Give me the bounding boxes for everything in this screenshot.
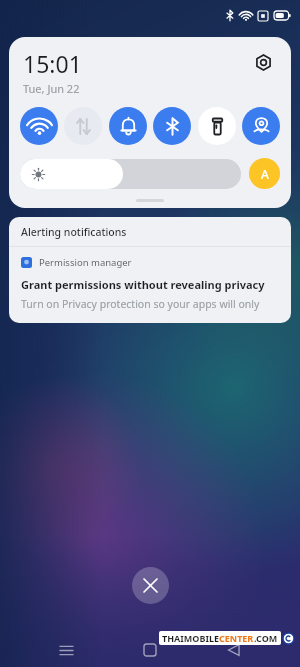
staticText: .COM xyxy=(254,632,278,644)
button[interactable]: Permission manager xyxy=(9,247,291,323)
button[interactable]: Ring mode xyxy=(109,107,147,145)
staticText: Turn on Privacy protection so your apps … xyxy=(21,297,279,311)
button[interactable]: Back xyxy=(216,633,252,667)
staticText: THAIMOBILE xyxy=(162,632,219,644)
button[interactable]: Brightness xyxy=(20,159,241,189)
button[interactable]: Settings xyxy=(249,48,277,76)
staticText: Tue, Jun 22 xyxy=(23,81,80,96)
button[interactable]: Mobile data xyxy=(64,107,102,145)
button[interactable]: Location xyxy=(242,107,280,145)
button[interactable]: Flashlight xyxy=(198,107,236,145)
button[interactable]: Close xyxy=(132,567,169,604)
button[interactable]: Alerting notifications xyxy=(9,217,291,246)
staticText: CENTER xyxy=(219,632,254,644)
button[interactable]: A xyxy=(249,158,280,189)
staticText: Alerting notifications xyxy=(21,225,127,239)
button[interactable]: Bluetooth xyxy=(153,107,191,145)
staticText: Permission manager xyxy=(39,256,132,269)
button[interactable]: Wi-Fi xyxy=(20,107,58,145)
staticText: A xyxy=(261,166,269,182)
button[interactable]: Recents xyxy=(48,633,84,667)
button[interactable]: Home xyxy=(132,633,168,667)
staticText: Grant permissions without revealing priv… xyxy=(21,277,279,292)
staticText: 15:01 xyxy=(23,48,82,79)
